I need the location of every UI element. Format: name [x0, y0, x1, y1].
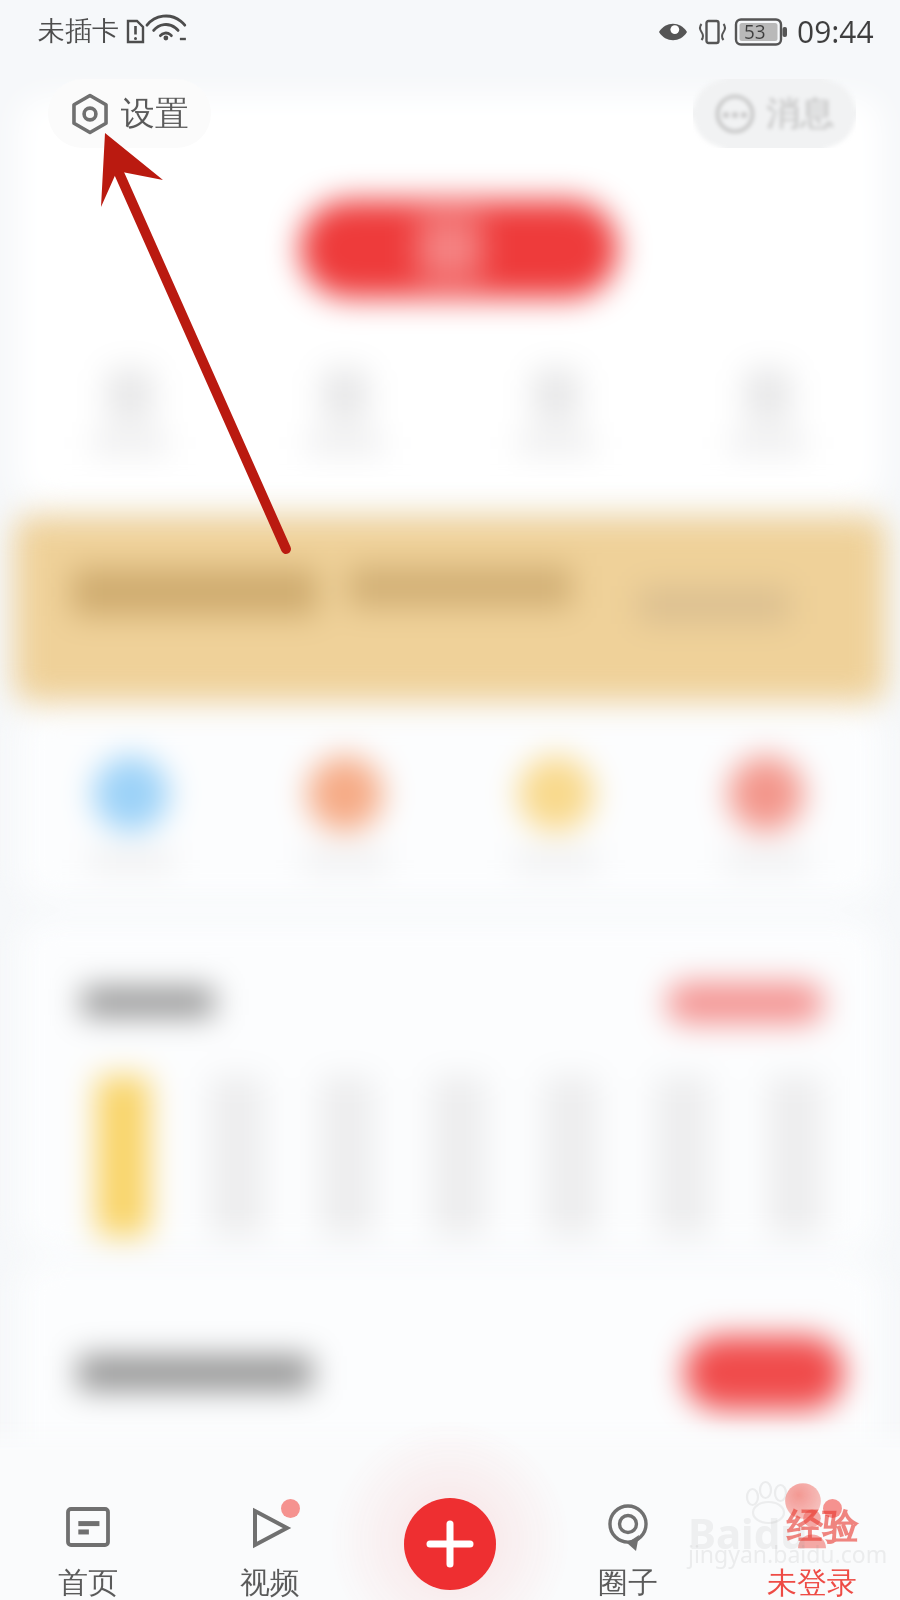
button[interactable]: 消息 [693, 79, 856, 148]
staticText: 经验 [786, 1504, 858, 1549]
staticText: 首页 [58, 1564, 118, 1600]
staticText: 未插卡 [38, 14, 119, 48]
staticText: 视频 [240, 1564, 300, 1600]
button[interactable]: 首页 [13, 1506, 163, 1600]
button[interactable]: 设置 [48, 79, 211, 148]
staticText: jingyan.baidu.com [688, 1538, 893, 1569]
staticText: 09:44 [797, 11, 874, 52]
staticText: 未登录 [767, 1564, 857, 1600]
button[interactable]: 视频 [195, 1506, 345, 1600]
staticText: Baidu [688, 1504, 808, 1561]
button[interactable]: Create post [404, 1498, 496, 1590]
staticText: 消息 [766, 92, 834, 135]
staticText: 圈子 [598, 1564, 658, 1600]
staticText: 53 [744, 19, 766, 45]
staticText: 设置 [121, 92, 189, 135]
button[interactable]: 圈子 [553, 1506, 703, 1600]
button[interactable]: 未登录 [737, 1506, 887, 1600]
